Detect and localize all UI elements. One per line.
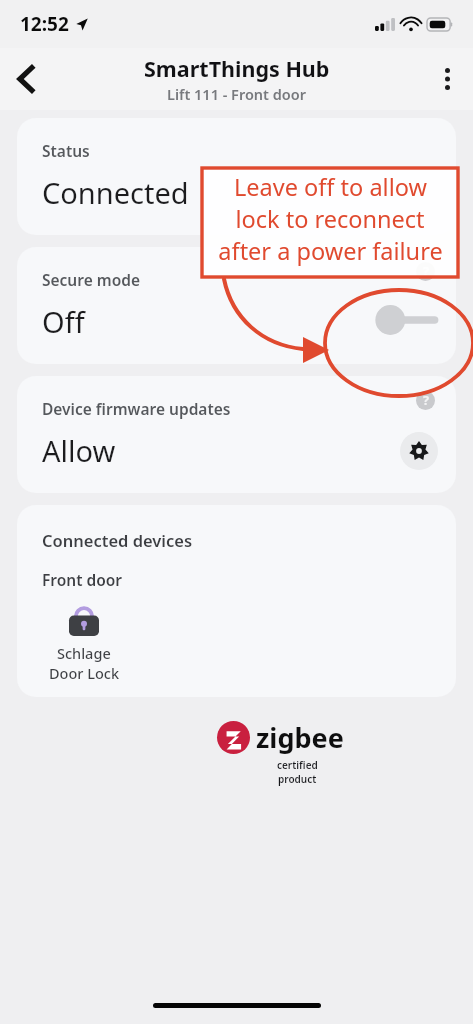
button[interactable]: Back bbox=[0, 53, 52, 105]
staticText: zigbee bbox=[256, 719, 344, 756]
staticText: Allow bbox=[42, 431, 116, 470]
staticText: certified bbox=[277, 758, 318, 772]
button[interactable]: Help bbox=[416, 391, 435, 410]
staticText: Schlage bbox=[57, 643, 111, 663]
staticText: after a power failure bbox=[218, 235, 443, 267]
button[interactable]: Firmware update settings bbox=[400, 432, 438, 470]
staticText: Secure mode bbox=[42, 269, 140, 290]
staticText: Device firmware updates bbox=[42, 398, 231, 419]
staticText: Leave off to allow bbox=[234, 171, 427, 203]
staticText: Off bbox=[42, 302, 85, 341]
button[interactable]: Secure mode toggle, off bbox=[375, 303, 441, 337]
staticText: lock to reconnect bbox=[235, 203, 425, 235]
button[interactable]: Secure mode bbox=[17, 247, 456, 364]
staticText: Door Lock bbox=[49, 663, 120, 683]
staticText: ? bbox=[423, 263, 429, 280]
staticText: ? bbox=[423, 392, 429, 409]
staticText: Status bbox=[42, 140, 90, 161]
staticText: 12:52 bbox=[20, 11, 69, 37]
staticText: Connected devices bbox=[42, 529, 193, 551]
staticText: Connected bbox=[42, 173, 189, 212]
button[interactable]: Help bbox=[416, 262, 435, 281]
button[interactable]: Device firmware updates bbox=[17, 376, 456, 493]
button[interactable]: Schlage Door Lock bbox=[42, 602, 126, 683]
staticText: SmartThings Hub bbox=[144, 54, 330, 83]
button[interactable]: Connected devices bbox=[17, 505, 456, 697]
button[interactable]: More options bbox=[421, 53, 473, 105]
staticText: product bbox=[278, 772, 317, 786]
staticText: Lift 111 - Front door bbox=[167, 84, 307, 104]
staticText: Front door bbox=[42, 569, 123, 590]
button[interactable]: Status bbox=[17, 118, 456, 235]
